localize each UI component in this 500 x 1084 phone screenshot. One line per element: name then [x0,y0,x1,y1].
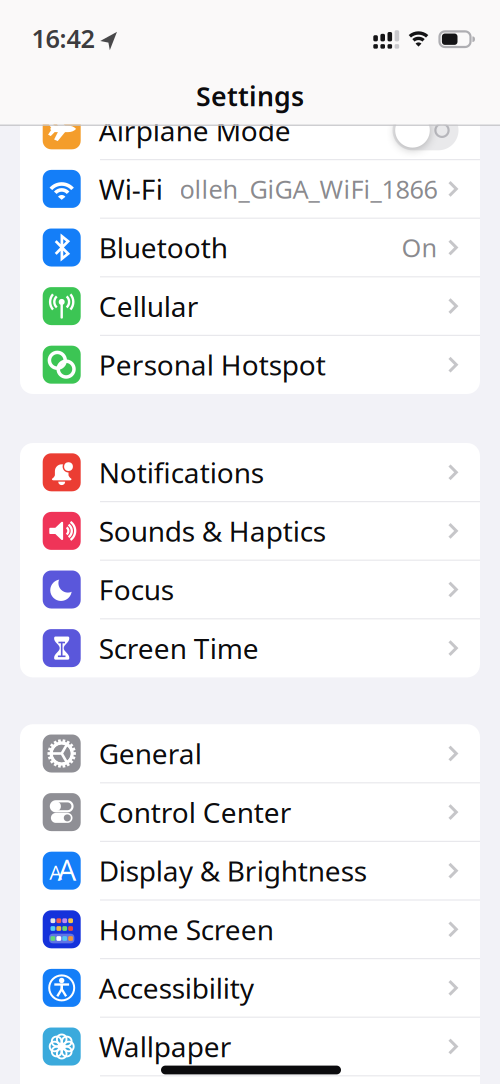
staticText: Airplane Mode [99,112,291,149]
staticText: olleh_GiGA_WiFi_1866 [179,172,437,206]
staticText: Personal Hotspot [99,346,326,383]
staticText: Focus [99,571,174,608]
staticText: Settings [196,78,304,114]
button[interactable]: Focus [20,560,480,619]
staticText: On [401,231,437,264]
button[interactable]: Home Screen [20,900,480,959]
staticText: Wallpaper [99,1028,232,1065]
staticText: Accessibility [99,969,254,1006]
staticText: Cellular [99,287,199,325]
button[interactable]: Control Center [20,783,480,841]
button[interactable]: Wi-Fi [20,160,480,218]
staticText: Wi-Fi [99,170,163,207]
staticText: Home Screen [99,911,274,948]
staticText: Control Center [99,793,292,831]
button[interactable]: Accessibility [20,959,480,1017]
staticText: A [57,850,76,889]
staticText: A [49,859,62,885]
button[interactable]: Bluetooth [20,218,480,277]
staticText: General [99,735,202,772]
staticText: Notifications [99,454,264,491]
button[interactable]: Sounds & Haptics [20,502,480,560]
button[interactable]: Airplane Mode [392,110,458,150]
staticText: Bluetooth [99,229,228,266]
button[interactable]: A [20,841,480,900]
button[interactable]: Cellular [20,277,480,335]
button[interactable]: Screen Time [20,619,480,677]
staticText: Sounds & Haptics [99,512,326,549]
staticText: 16:42 [31,21,94,55]
staticText: Display & Brightness [99,852,367,889]
button[interactable]: General [20,724,480,783]
button[interactable]: Wallpaper [20,1017,480,1076]
button[interactable]: Personal Hotspot [20,335,480,394]
staticText: Screen Time [99,629,259,667]
button[interactable]: Notifications [20,443,480,502]
